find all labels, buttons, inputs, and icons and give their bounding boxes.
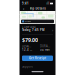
button[interactable]: Get Receipt	[22, 55, 53, 61]
staticText: Get Receipt	[29, 56, 46, 60]
staticText: Arrived	[25, 20, 31, 22]
staticText: COMPLETED	[22, 25, 36, 29]
staticText: $79.00	[22, 36, 38, 44]
button[interactable]: Support	[22, 65, 33, 68]
staticText: DISTANCE	[22, 44, 32, 48]
staticText: 34 min	[40, 48, 50, 51]
staticText: ›	[52, 27, 53, 33]
staticText: ıll	[46, 2, 49, 5]
staticText: ‹	[23, 6, 24, 11]
staticText: Today, 7:45 PM	[22, 28, 44, 32]
staticText: 9:41	[22, 2, 29, 5]
staticText: Support	[22, 65, 33, 68]
staticText: Trip Details	[29, 7, 45, 10]
button[interactable]: Back	[22, 6, 25, 10]
staticText: DURATION	[40, 44, 50, 48]
staticText: 12.4 mi	[22, 48, 32, 51]
